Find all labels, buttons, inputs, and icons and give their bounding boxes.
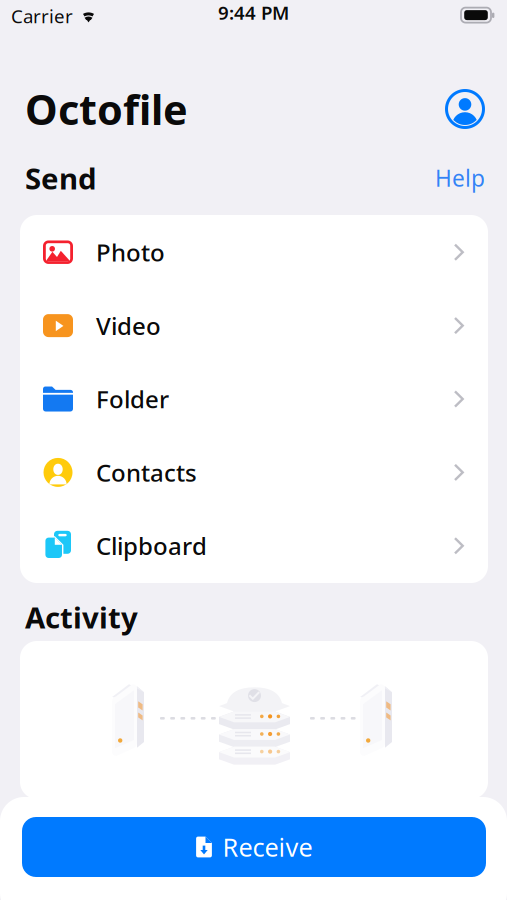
staticText: Contacts: [96, 456, 197, 488]
staticText: Help: [435, 163, 485, 193]
staticText: Folder: [96, 383, 169, 415]
staticText: Activity: [25, 597, 138, 636]
staticText: Send: [25, 158, 97, 197]
button[interactable]: Clipboard: [20, 509, 488, 582]
button[interactable]: Profile: [445, 89, 485, 129]
staticText: Video: [96, 310, 161, 342]
button[interactable]: Video: [20, 289, 488, 362]
button[interactable]: Help: [435, 163, 485, 193]
staticText: Octofile: [25, 82, 188, 136]
button[interactable]: Folder: [20, 362, 488, 436]
staticText: Carrier: [11, 4, 73, 28]
staticText: Photo: [96, 236, 165, 268]
staticText: 9:44 PM: [218, 0, 289, 25]
button[interactable]: Contacts: [20, 436, 488, 509]
button[interactable]: Photo: [20, 215, 488, 289]
staticText: Clipboard: [96, 530, 207, 562]
button[interactable]: Receive: [22, 817, 486, 877]
staticText: Receive: [222, 830, 312, 864]
